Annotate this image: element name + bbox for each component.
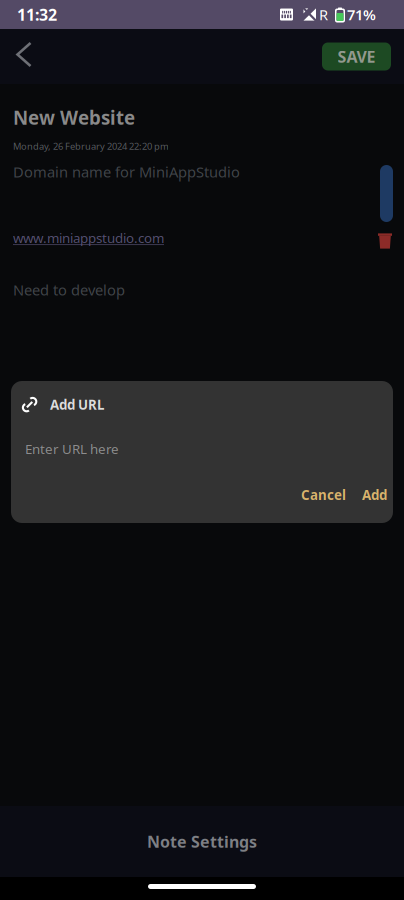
button[interactable]: Add <box>362 486 387 504</box>
button[interactable]: SAVE <box>322 42 391 70</box>
staticText: Need to develop <box>13 280 125 299</box>
button[interactable]: Cancel <box>301 486 346 504</box>
staticText: R <box>319 5 328 24</box>
staticText: Enter URL here <box>25 440 119 458</box>
button[interactable]: Back <box>6 33 52 79</box>
staticText: Note Settings <box>147 831 257 852</box>
staticText: 11:32 <box>17 4 57 25</box>
staticText: Add <box>362 486 387 504</box>
button[interactable]: Delete <box>378 233 392 249</box>
staticText: www.miniappstudio.com <box>13 229 164 247</box>
staticText: New Website <box>13 105 135 130</box>
staticText: Cancel <box>301 486 346 504</box>
staticText: SAVE <box>337 46 375 67</box>
staticText: 71% <box>347 5 376 24</box>
staticText: Monday, 26 February 2024 22:20 pm <box>13 140 169 152</box>
staticText: Add URL <box>50 396 104 413</box>
button[interactable]: Note Settings <box>0 806 404 877</box>
staticText: Domain name for MiniAppStudio <box>13 162 240 181</box>
